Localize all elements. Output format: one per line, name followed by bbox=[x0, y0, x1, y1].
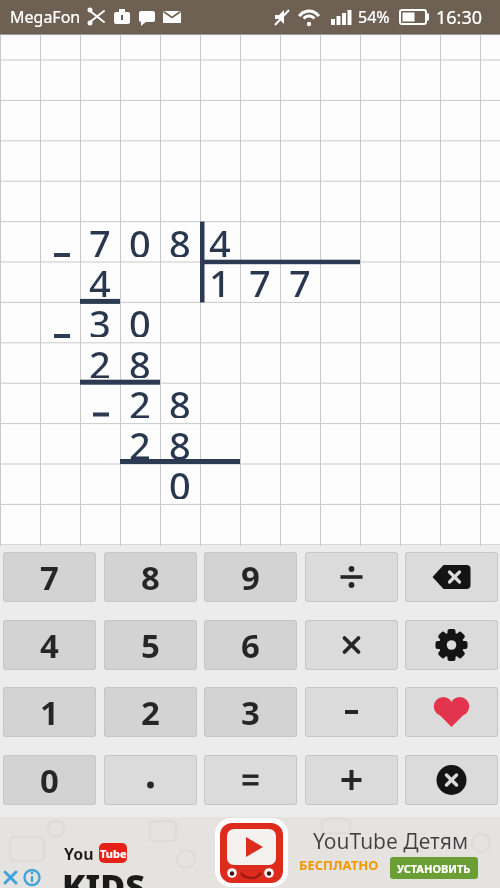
button[interactable] bbox=[305, 552, 398, 602]
staticText: 6 bbox=[241, 623, 260, 668]
button[interactable]: 7 bbox=[3, 552, 96, 602]
button[interactable]: 6 bbox=[204, 620, 297, 670]
button[interactable] bbox=[215, 818, 288, 887]
staticText: 1 bbox=[40, 690, 59, 735]
staticText: 7 bbox=[89, 217, 111, 257]
button[interactable] bbox=[405, 687, 498, 737]
staticText: You bbox=[64, 843, 94, 863]
staticText: YouTube Детям bbox=[313, 827, 469, 853]
staticText: 7 bbox=[249, 257, 271, 297]
button[interactable] bbox=[305, 687, 398, 737]
staticText: БЕСПЛАТНО bbox=[299, 856, 379, 874]
staticText: Tube bbox=[100, 846, 127, 861]
button[interactable] bbox=[405, 620, 498, 670]
staticText: 3 bbox=[89, 297, 111, 337]
button[interactable] bbox=[305, 620, 398, 670]
button[interactable] bbox=[104, 755, 197, 805]
staticText: 54% bbox=[358, 6, 390, 28]
button[interactable] bbox=[305, 755, 398, 805]
staticText: 4 bbox=[209, 217, 231, 257]
staticText: 8 bbox=[141, 555, 160, 600]
staticText: KIDS bbox=[62, 863, 145, 888]
staticText: 16:30 bbox=[436, 5, 483, 30]
staticText: 8 bbox=[129, 338, 151, 378]
button[interactable] bbox=[204, 755, 297, 805]
staticText: 4 bbox=[40, 623, 59, 668]
button[interactable]: 9 bbox=[204, 552, 297, 602]
staticText: 2 bbox=[141, 690, 160, 735]
staticText: 8 bbox=[169, 217, 191, 257]
staticText: 7 bbox=[40, 555, 59, 600]
button[interactable]: 4 bbox=[3, 620, 96, 670]
button[interactable] bbox=[0, 817, 50, 888]
button[interactable]: 2 bbox=[104, 687, 197, 737]
button[interactable]: 3 bbox=[204, 687, 297, 737]
staticText: 0 bbox=[169, 459, 191, 499]
staticText: 3 bbox=[241, 690, 260, 735]
staticText: 2 bbox=[129, 419, 151, 459]
staticText: 5 bbox=[141, 623, 160, 668]
staticText: 8 bbox=[169, 378, 191, 418]
staticText: 4 bbox=[89, 257, 111, 297]
button[interactable]: 5 bbox=[104, 620, 197, 670]
staticText: MegaFon bbox=[10, 6, 81, 28]
staticText: 8 bbox=[169, 419, 191, 459]
staticText: 1 bbox=[209, 257, 231, 297]
button[interactable]: 8 bbox=[104, 552, 197, 602]
button[interactable] bbox=[405, 755, 498, 805]
staticText: 2 bbox=[129, 378, 151, 418]
button[interactable]: 1 bbox=[3, 687, 96, 737]
staticText: УСТАНОВИТЬ bbox=[397, 861, 471, 876]
button[interactable]: You bbox=[0, 817, 500, 888]
button[interactable] bbox=[405, 552, 498, 602]
button[interactable]: 0 bbox=[3, 755, 96, 805]
staticText: 2 bbox=[89, 338, 111, 378]
staticText: 0 bbox=[129, 217, 151, 257]
staticText: 9 bbox=[241, 555, 260, 600]
button[interactable]: УСТАНОВИТЬ bbox=[390, 857, 478, 879]
staticText: 0 bbox=[129, 297, 151, 337]
staticText: 7 bbox=[289, 257, 311, 297]
staticText: 0 bbox=[40, 758, 59, 803]
